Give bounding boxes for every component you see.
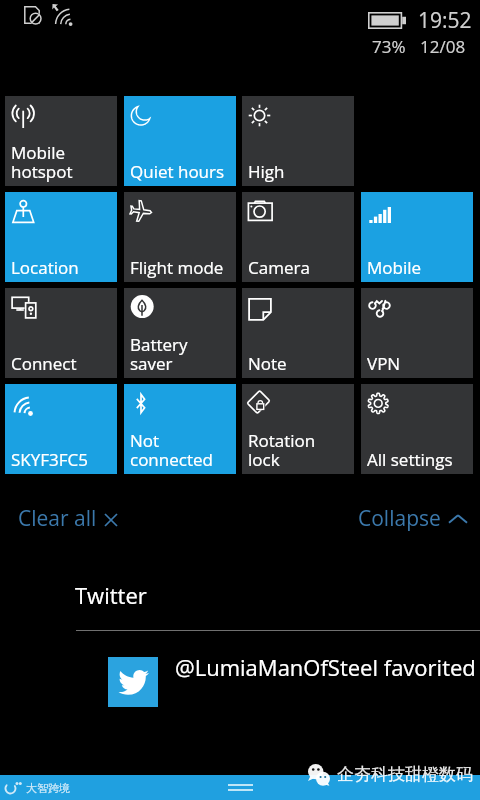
staticText: Quiet hours (130, 160, 225, 183)
staticText: Not connected (130, 429, 213, 471)
button[interactable]: Camera (242, 192, 354, 282)
staticText: 大智跨境 (26, 781, 70, 795)
staticText: Connect (11, 352, 77, 375)
button[interactable]: @LumiaManOfSteel favorited (108, 657, 480, 707)
button[interactable]: All settings (361, 384, 473, 474)
button[interactable]: Clear all (18, 504, 118, 533)
button[interactable]: Note (242, 288, 354, 378)
staticText: VPN (367, 352, 401, 375)
staticText: All settings (367, 448, 453, 471)
staticText: 19:52 (418, 6, 472, 35)
button[interactable]: Collapse (358, 504, 467, 533)
staticText: 73% (372, 35, 406, 58)
staticText: Note (248, 352, 287, 375)
button[interactable]: Twitter (75, 580, 147, 610)
button[interactable]: High (242, 96, 354, 186)
staticText: Mobile (367, 256, 422, 279)
staticText: Flight mode (130, 256, 224, 279)
staticText: @LumiaManOfSteel favorited (175, 652, 476, 682)
button[interactable]: Quiet hours (124, 96, 236, 186)
staticText: High (248, 160, 285, 183)
staticText: 12/08 (420, 35, 466, 58)
staticText: 企夯科技甜橙数码 (337, 764, 473, 785)
staticText: Mobile hotspot (11, 141, 73, 183)
button[interactable]: Location (5, 192, 117, 282)
button[interactable]: VPN (361, 288, 473, 378)
staticText: Rotation lock (248, 429, 316, 471)
button[interactable]: Rotation lock (242, 384, 354, 474)
button[interactable]: SKYF3FC5 (5, 384, 117, 474)
button[interactable]: Flight mode (124, 192, 236, 282)
button[interactable]: Not connected (124, 384, 236, 474)
button[interactable]: Mobile hotspot (5, 96, 117, 186)
button[interactable]: Connect (5, 288, 117, 378)
staticText: Clear all (18, 504, 97, 533)
button[interactable]: Mobile (361, 192, 473, 282)
staticText: Location (11, 256, 79, 279)
staticText: SKYF3FC5 (11, 448, 88, 471)
staticText: Camera (248, 256, 310, 279)
button[interactable]: Battery saver (124, 288, 236, 378)
staticText: Battery saver (130, 333, 188, 375)
staticText: Collapse (358, 504, 441, 533)
